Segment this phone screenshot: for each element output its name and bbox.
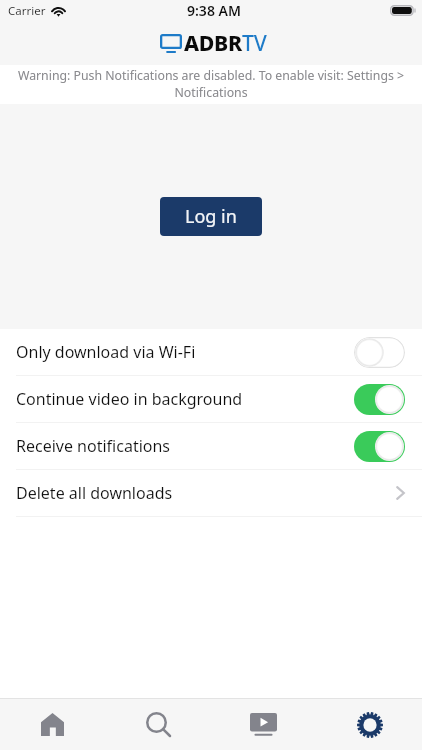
staticText: TV [242,28,267,57]
staticText: 9:38 AM [187,1,241,20]
button[interactable]: Only download via Wi-Fi [0,329,422,375]
button[interactable]: Toggle off [354,337,405,368]
button[interactable]: Toggle on [354,431,405,462]
button[interactable]: Log in [160,197,262,236]
button[interactable]: Toggle on [354,384,405,415]
button[interactable]: Continue video in background [0,376,422,422]
staticText: Only download via Wi-Fi [16,341,196,363]
button[interactable]: Home [0,699,105,750]
button[interactable]: Videos [210,699,316,750]
staticText: Receive notifications [16,435,171,457]
staticText: Carrier [8,3,46,19]
button[interactable]: Search [105,699,210,750]
button[interactable]: Receive notifications [0,423,422,469]
button[interactable]: Settings [316,699,422,750]
button[interactable]: Delete all downloads [0,470,422,516]
staticText: Log in [185,204,237,229]
staticText: Warning: Push Notifications are disabled… [8,67,414,101]
staticText: Continue video in background [16,388,243,410]
staticText: Delete all downloads [16,482,173,504]
staticText: ADBR [184,28,242,57]
